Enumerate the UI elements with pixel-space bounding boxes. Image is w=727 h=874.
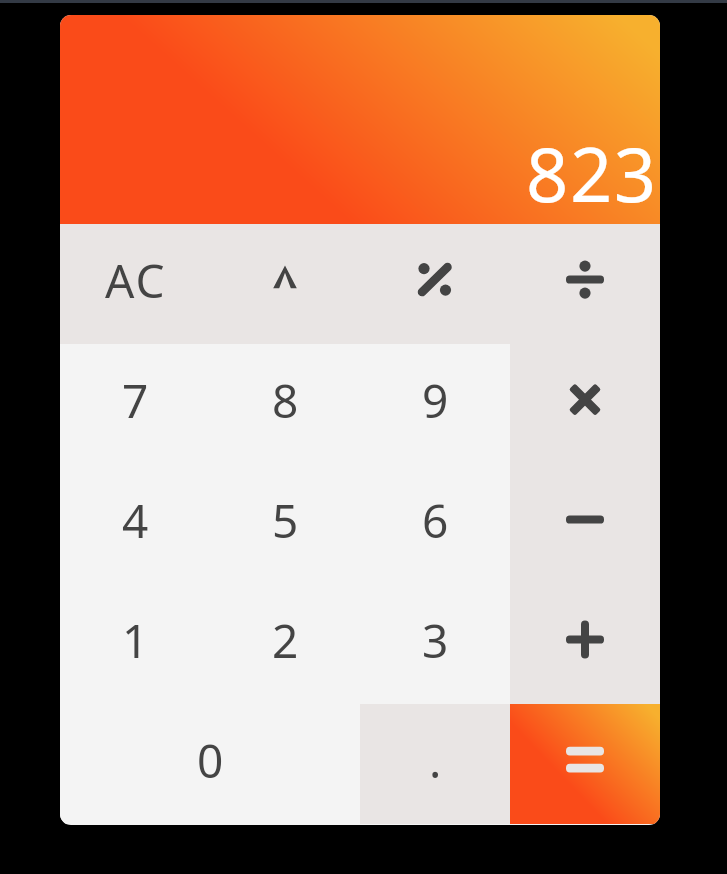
staticText: 1 [122,609,151,672]
button[interactable]: Divide [510,224,660,344]
staticText: 9 [422,369,451,432]
button[interactable]: Plus [510,584,660,704]
button[interactable]: 9 [360,344,510,464]
staticText: 5 [272,489,301,552]
button[interactable]: 5 [210,464,360,584]
staticText: 3 [422,609,451,672]
button[interactable]: Equals [510,704,660,824]
staticText: 4 [122,489,151,552]
button[interactable]: Minus [510,464,660,584]
button[interactable]: 1 [60,584,210,704]
button[interactable]: Percent [360,224,510,344]
button[interactable]: . [360,704,510,824]
staticText: 2 [272,609,301,672]
button[interactable]: 2 [210,584,360,704]
button[interactable]: 8 [210,344,360,464]
staticText: 7 [122,369,151,432]
button[interactable]: 3 [360,584,510,704]
button[interactable]: 6 [360,464,510,584]
button[interactable]: 7 [60,344,210,464]
staticText: 8 [272,369,301,432]
staticText: AC [105,249,167,312]
staticText: 6 [422,489,451,552]
button[interactable]: AC [60,224,210,344]
button[interactable]: Power [210,224,360,344]
staticText: . [429,729,444,792]
button[interactable]: 0 [60,704,360,824]
button[interactable]: 4 [60,464,210,584]
staticText: 0 [197,729,226,792]
button[interactable]: Multiply [510,344,660,464]
staticText: 823 [526,123,658,224]
